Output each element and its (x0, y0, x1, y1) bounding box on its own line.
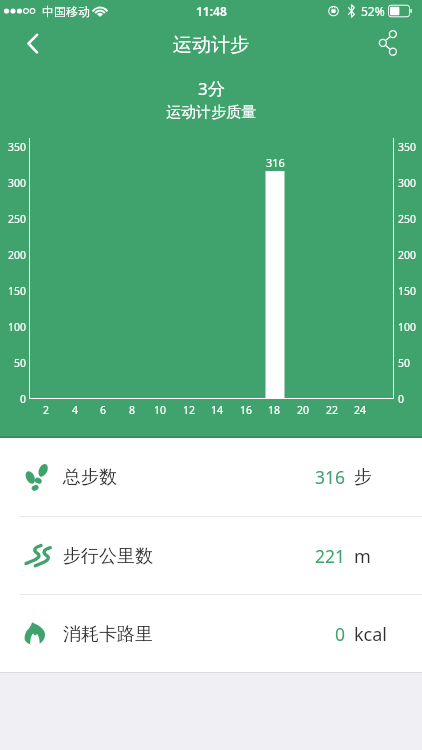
staticText: 24 (354, 403, 367, 417)
staticText: 250 (398, 212, 417, 226)
staticText: kcal (354, 622, 387, 647)
staticText: 运动计步 (173, 33, 249, 57)
staticText: 20 (297, 403, 310, 417)
staticText: 50 (14, 356, 27, 370)
staticText: 100 (8, 320, 27, 334)
staticText: 100 (398, 320, 417, 334)
staticText: 18 (268, 403, 281, 417)
staticText: 350 (398, 140, 417, 154)
staticText: 200 (398, 248, 417, 262)
staticText: 221 (315, 544, 346, 568)
staticText: 14 (211, 403, 224, 417)
staticText: 中国移动 (42, 4, 90, 19)
staticText: m (354, 544, 371, 569)
button[interactable] (14, 28, 50, 64)
staticText: 步行公里数 (63, 545, 153, 568)
staticText: 4 (72, 403, 79, 417)
staticText: 0 (20, 392, 27, 406)
button[interactable]: 总步数 (0, 438, 422, 516)
staticText: 316 (315, 465, 346, 489)
button[interactable]: 步行公里数 (0, 517, 422, 595)
staticText: 52% (361, 3, 385, 19)
staticText: 16 (240, 403, 253, 417)
button[interactable] (372, 26, 410, 64)
staticText: 消耗卡路里 (63, 623, 153, 646)
staticText: 11:48 (196, 3, 227, 19)
button[interactable]: 消耗卡路里 (0, 595, 422, 673)
staticText: 0 (335, 622, 346, 646)
staticText: 300 (8, 176, 27, 190)
staticText: 300 (398, 176, 417, 190)
staticText: 总步数 (63, 466, 117, 489)
staticText: 150 (398, 284, 417, 298)
staticText: 0 (398, 392, 405, 406)
staticText: 2 (43, 403, 50, 417)
staticText: 150 (8, 284, 27, 298)
staticText: 200 (8, 248, 27, 262)
staticText: 12 (183, 403, 196, 417)
staticText: 运动计步质量 (166, 103, 256, 122)
staticText: 316 (266, 155, 285, 170)
staticText: 350 (8, 140, 27, 154)
staticText: 6 (100, 403, 107, 417)
staticText: 250 (8, 212, 27, 226)
staticText: 3分 (198, 77, 225, 100)
staticText: 50 (398, 356, 411, 370)
staticText: 22 (326, 403, 339, 417)
staticText: 步 (354, 466, 372, 489)
staticText: 8 (129, 403, 136, 417)
staticText: 10 (154, 403, 167, 417)
